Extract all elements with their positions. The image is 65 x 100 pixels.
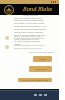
button[interactable]: ORDER	[33, 56, 52, 62]
button[interactable]: Back	[33, 93, 37, 97]
button[interactable]: Slow fermented for 24 hours	[0, 43, 59, 50]
button[interactable]: Home	[38, 93, 42, 97]
staticText: ORDER	[39, 58, 46, 61]
button[interactable]: FIND YOUR NEAREST SHOP	[18, 78, 52, 82]
staticText: Stone milled organic flour	[14, 35, 42, 38]
staticText: VIEW MENU	[35, 68, 47, 71]
staticText: Ready to place an order?	[29, 51, 55, 54]
staticText: Slow fermented for 24 hours	[14, 44, 45, 47]
staticText: ARTISAN BAKERY	[23, 14, 39, 17]
staticText: giving a deep rich flavour	[14, 47, 42, 50]
button[interactable]: VIEW MENU	[29, 66, 52, 72]
staticText: Bond Blake	[23, 5, 53, 13]
staticText: FIND YOUR NEAREST SHOP	[22, 79, 49, 82]
button[interactable]: Stone milled organic flour	[0, 34, 59, 41]
staticText: Handcrafted loaves and pastries baked fr…	[14, 16, 47, 46]
button[interactable]: Bond Blake crest	[4, 5, 14, 15]
staticText: from local family farms	[14, 38, 39, 41]
button[interactable]: Recents	[43, 93, 47, 97]
